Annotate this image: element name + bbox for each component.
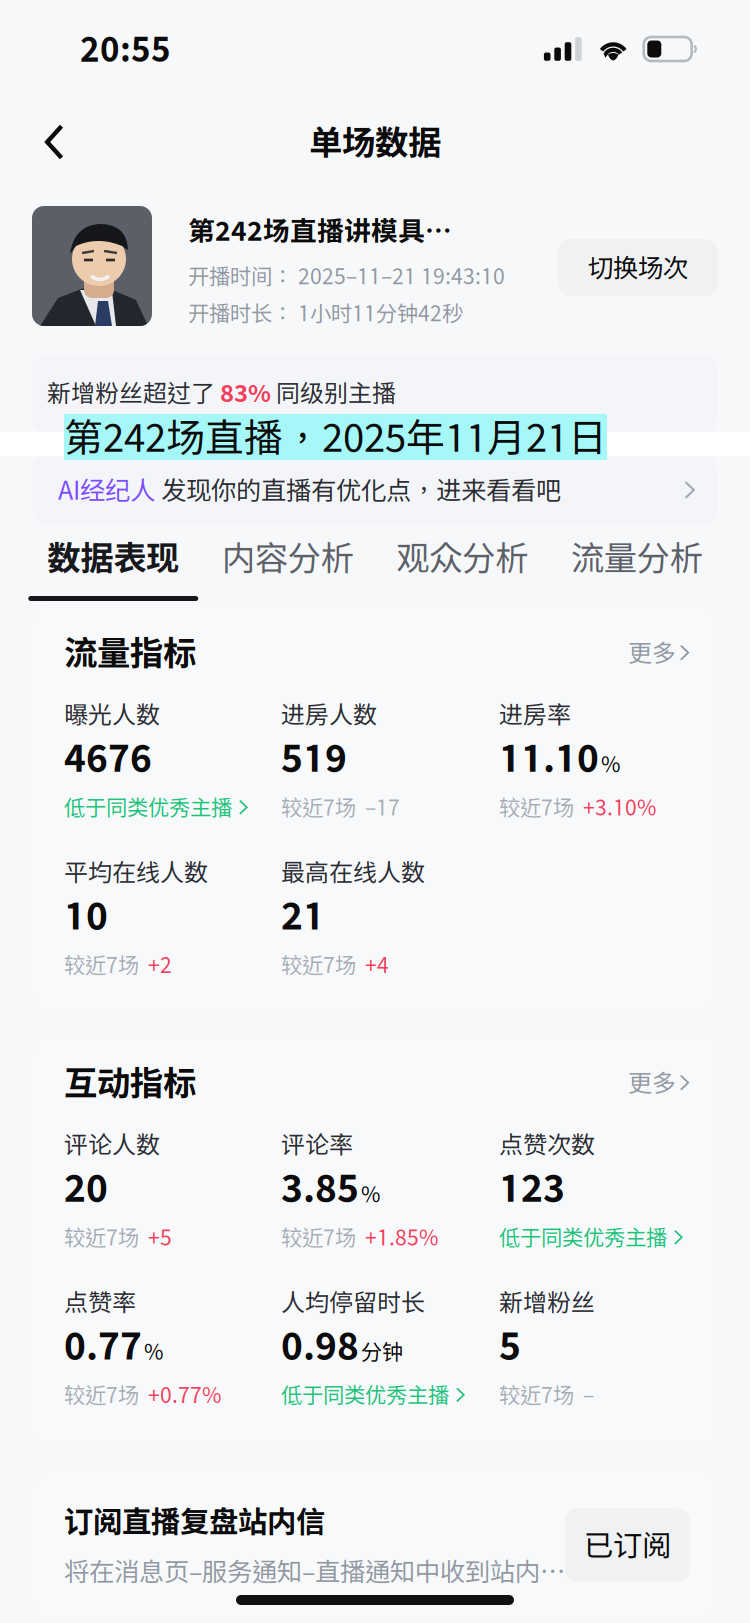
button[interactable]: 流量分析 xyxy=(549,524,724,601)
button[interactable]: 更多 xyxy=(628,634,690,671)
staticText: 较近7场 xyxy=(281,1225,356,1250)
staticText: –17 xyxy=(365,795,400,820)
staticText: – xyxy=(583,1382,594,1407)
staticText: 数据表现 xyxy=(47,538,179,577)
staticText: 点赞次数 xyxy=(499,1130,595,1159)
staticText: 订阅直播复盘站内信 xyxy=(64,1504,325,1538)
button[interactable]: 更多 xyxy=(628,1064,690,1101)
staticText: 人均停留时长 xyxy=(281,1288,425,1316)
staticText: 较近7场 xyxy=(281,795,356,820)
staticText: 83% xyxy=(220,379,271,407)
button[interactable]: AI经纪人 xyxy=(0,456,750,524)
button[interactable]: 低于同类优秀主播 xyxy=(499,1210,683,1250)
staticText: 519 xyxy=(281,736,347,780)
staticText: 20:55 xyxy=(80,29,171,69)
staticText: 10 xyxy=(64,893,108,937)
button[interactable]: 切换场次 xyxy=(558,239,718,296)
staticText: 评论率 xyxy=(281,1130,353,1159)
staticText: % xyxy=(601,751,620,777)
staticText: AI经纪人 xyxy=(58,475,155,505)
staticText: 11.10 xyxy=(499,736,599,780)
staticText: 开播时间： 2025–11–21 19:43:10 xyxy=(188,263,505,289)
staticText: 低于同类优秀主播 xyxy=(499,1225,667,1250)
button[interactable]: 返回 xyxy=(25,106,84,178)
staticText: 观众分析 xyxy=(396,538,528,577)
staticText: 更多 xyxy=(628,1068,676,1097)
staticText: 评论人数 xyxy=(64,1130,160,1159)
staticText: 将在消息页–服务通知–直播通知中收到站内信推送 xyxy=(64,1556,565,1586)
staticText: 21 xyxy=(281,893,325,937)
staticText: +1.85% xyxy=(365,1225,438,1250)
staticText: 较近7场 xyxy=(499,795,574,820)
staticText: 较近7场 xyxy=(64,952,139,977)
staticText: 第242场直播讲模具… xyxy=(188,215,452,246)
staticText: +0.77% xyxy=(148,1382,221,1407)
staticText: +3.10% xyxy=(583,795,656,820)
staticText: 较近7场 xyxy=(64,1382,139,1407)
button[interactable]: 已订阅 xyxy=(565,1508,690,1581)
staticText: 平均在线人数 xyxy=(64,858,208,886)
staticText: 进房人数 xyxy=(281,700,377,729)
staticText: 第242场直播，2025年11月21日 xyxy=(64,414,607,460)
button[interactable]: 观众分析 xyxy=(375,524,549,601)
staticText: 内容分析 xyxy=(222,538,354,577)
staticText: 新增粉丝 xyxy=(499,1288,595,1316)
staticText: 分钟 xyxy=(361,1339,403,1364)
staticText: 4676 xyxy=(64,736,152,780)
staticText: 流量指标 xyxy=(64,633,196,672)
staticText: 0.98 xyxy=(281,1323,359,1367)
staticText: % xyxy=(144,1339,163,1364)
staticText: 新增粉丝超过了 xyxy=(47,379,220,407)
staticText: 低于同类优秀主播 xyxy=(281,1382,449,1407)
staticText: 流量分析 xyxy=(571,538,703,577)
staticText: 较近7场 xyxy=(499,1382,574,1407)
staticText: 开播时长： 1小时11分钟42秒 xyxy=(188,301,463,326)
staticText: 较近7场 xyxy=(64,1225,139,1250)
staticText: 3.85 xyxy=(281,1166,359,1210)
staticText: 点赞率 xyxy=(64,1288,136,1316)
button[interactable]: 内容分析 xyxy=(200,524,375,601)
staticText: +4 xyxy=(365,952,389,977)
button[interactable]: 低于同类优秀主播 xyxy=(64,780,248,820)
staticText: +2 xyxy=(148,952,172,977)
staticText: 已订阅 xyxy=(584,1528,671,1562)
staticText: 单场数据 xyxy=(309,122,441,162)
button[interactable]: 低于同类优秀主播 xyxy=(281,1367,465,1407)
staticText: 5 xyxy=(499,1323,521,1367)
staticText: 发现你的直播有优化点，进来看看吧 xyxy=(155,475,561,505)
staticText: 切换场次 xyxy=(588,253,688,282)
staticText: 曝光人数 xyxy=(64,700,160,729)
staticText: +5 xyxy=(148,1225,172,1250)
staticText: 更多 xyxy=(628,638,676,667)
staticText: 0.77 xyxy=(64,1323,142,1367)
staticText: 进房率 xyxy=(499,700,571,729)
staticText: 较近7场 xyxy=(281,952,356,977)
staticText: 同级别主播 xyxy=(271,379,396,407)
staticText: % xyxy=(361,1181,380,1207)
staticText: 123 xyxy=(499,1166,565,1210)
staticText: 互动指标 xyxy=(64,1063,196,1102)
staticText: 20 xyxy=(64,1166,108,1210)
button[interactable]: 数据表现 xyxy=(26,524,200,601)
staticText: 低于同类优秀主播 xyxy=(64,795,232,820)
staticText: 最高在线人数 xyxy=(281,858,425,886)
